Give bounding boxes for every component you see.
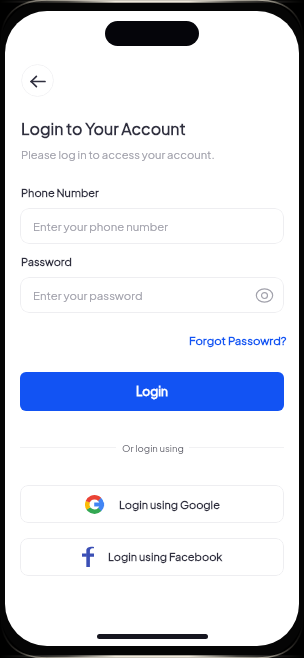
staticText: Forgot Passowrd? [189,333,287,347]
staticText: Password [21,255,72,269]
button[interactable]: Enter your phone number [20,208,284,244]
button[interactable]: Enter your password [20,277,284,313]
button[interactable]: Login using Facebook [20,538,284,576]
staticText: Login using Facebook [108,550,223,564]
staticText: Login using Google [119,498,220,512]
button[interactable]: Back [21,64,54,97]
button[interactable]: Forgot Passowrd? [189,333,287,347]
staticText: Login [136,384,168,399]
staticText: Enter your password [33,288,143,302]
button[interactable]: Login [20,372,284,411]
staticText: Phone Number [21,186,99,200]
other: Show password [256,287,273,304]
staticText: Login to Your Account [21,118,186,138]
button[interactable]: Login using Google [20,485,284,523]
staticText: Enter your phone number [33,219,169,233]
staticText: Or login using [122,442,184,454]
staticText: Please log in to access your account. [21,147,215,161]
